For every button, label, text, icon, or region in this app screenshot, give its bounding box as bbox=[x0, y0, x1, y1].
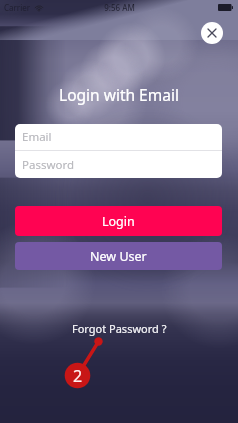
staticText: Login bbox=[102, 213, 135, 230]
staticText: Carrier bbox=[4, 2, 31, 13]
staticText: Forgot Password ? bbox=[72, 321, 167, 336]
staticText: Email bbox=[22, 129, 52, 145]
staticText: Login with Email bbox=[0, 84, 238, 105]
staticText: 2 bbox=[73, 365, 83, 387]
button[interactable]: Login bbox=[15, 206, 222, 236]
button[interactable]: Forgot Password ? bbox=[64, 317, 175, 340]
button[interactable]: Close bbox=[201, 22, 223, 44]
staticText: 9:56 AM bbox=[104, 2, 135, 13]
button[interactable]: Step 2 bbox=[64, 362, 91, 389]
staticText: New User bbox=[90, 248, 147, 265]
button[interactable]: Email bbox=[15, 124, 222, 150]
button[interactable]: Password bbox=[15, 151, 222, 178]
staticText: Password bbox=[22, 157, 75, 173]
button[interactable]: New User bbox=[15, 242, 222, 270]
